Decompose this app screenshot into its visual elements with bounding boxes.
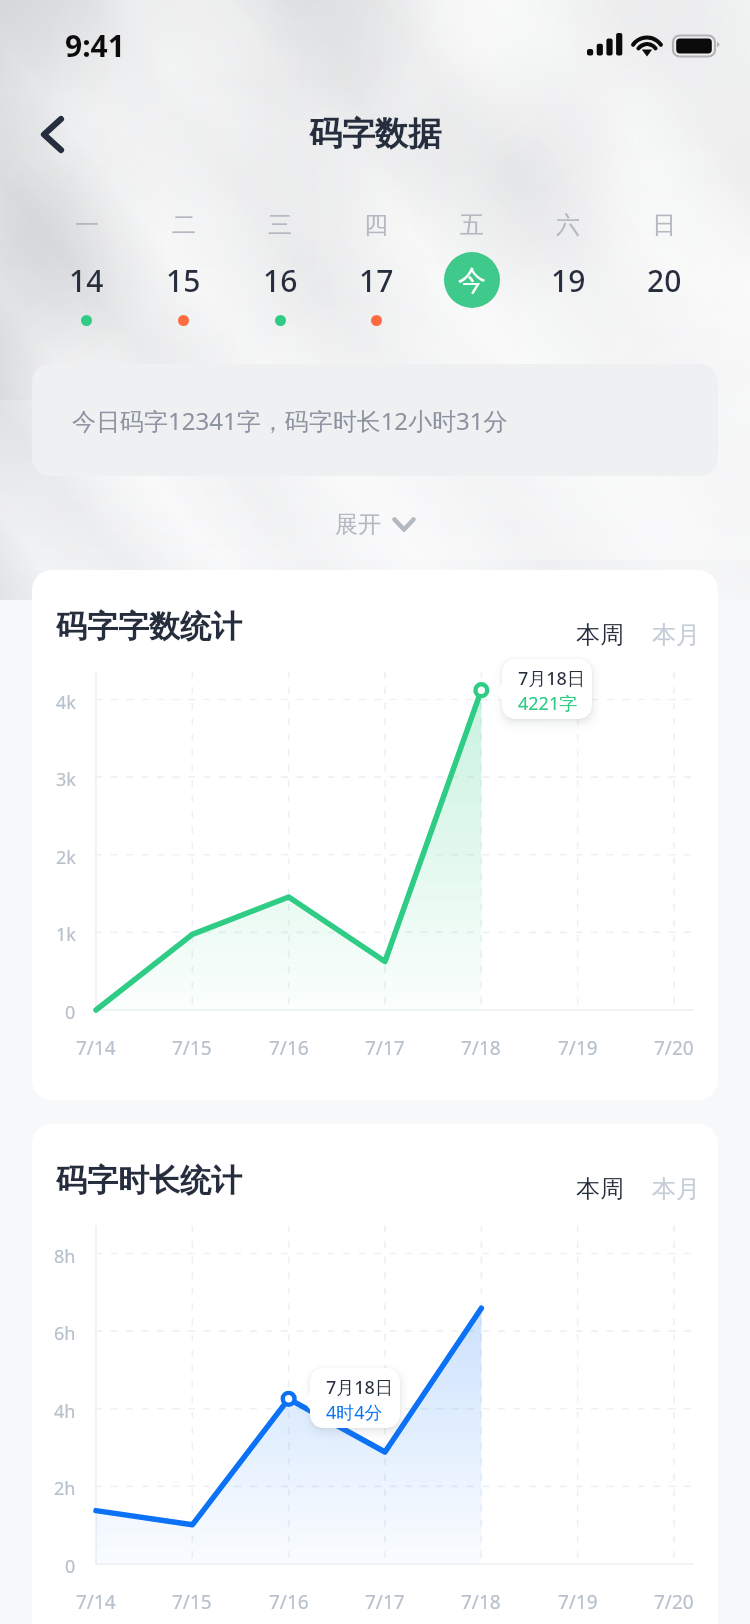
staticText: 7/16 xyxy=(269,1589,309,1615)
staticText: 20 xyxy=(647,260,682,301)
button[interactable]: 三 xyxy=(232,200,328,350)
staticText: 7/20 xyxy=(654,1589,694,1615)
staticText: 2h xyxy=(54,1476,76,1501)
staticText: 7/20 xyxy=(654,1035,694,1061)
staticText: 7/17 xyxy=(365,1035,405,1061)
staticText: 展开 xyxy=(335,510,381,539)
button[interactable]: 日 xyxy=(616,200,712,350)
staticText: 7月18日 xyxy=(326,1375,393,1400)
staticText: 0 xyxy=(65,1000,76,1025)
staticText: 码字数据 xyxy=(309,113,441,155)
staticText: 本月 xyxy=(652,1174,700,1204)
staticText: 7/18 xyxy=(461,1589,501,1615)
staticText: 2k xyxy=(56,845,76,870)
button[interactable]: 本周 xyxy=(570,1166,630,1212)
staticText: 7/17 xyxy=(365,1589,405,1615)
staticText: 7/14 xyxy=(76,1035,116,1061)
button[interactable]: 一 xyxy=(38,200,135,350)
button[interactable]: 六 xyxy=(520,200,616,350)
staticText: 17 xyxy=(359,260,394,301)
staticText: 19 xyxy=(551,260,586,301)
staticText: 9:41 xyxy=(65,25,125,66)
staticText: 4时4分 xyxy=(326,1400,383,1425)
staticText: 8h xyxy=(54,1244,76,1269)
button[interactable]: 本月 xyxy=(646,1166,706,1212)
staticText: 7/14 xyxy=(76,1589,116,1615)
staticText: 7/15 xyxy=(172,1035,212,1061)
staticText: 六 xyxy=(556,210,580,240)
staticText: 7/15 xyxy=(172,1589,212,1615)
staticText: 本周 xyxy=(576,1174,624,1204)
staticText: 码字时长统计 xyxy=(56,1161,242,1200)
staticText: 4k xyxy=(56,690,76,715)
staticText: 五 xyxy=(460,210,484,240)
staticText: 16 xyxy=(263,260,298,301)
button[interactable]: 四 xyxy=(328,200,424,350)
button[interactable]: 本周 xyxy=(570,612,630,658)
staticText: 今 xyxy=(458,263,486,298)
staticText: 7/19 xyxy=(558,1589,598,1615)
staticText: 0 xyxy=(65,1554,76,1579)
staticText: 4h xyxy=(54,1399,76,1424)
staticText: 15 xyxy=(166,260,201,301)
button[interactable]: 五 xyxy=(424,200,520,350)
staticText: 本月 xyxy=(652,620,700,650)
staticText: 今日码字12341字，码字时长12小时31分 xyxy=(72,404,508,437)
button[interactable]: 展开 xyxy=(323,504,428,545)
staticText: 3k xyxy=(56,767,76,792)
staticText: 日 xyxy=(652,210,676,240)
staticText: 7/16 xyxy=(269,1035,309,1061)
staticText: 四 xyxy=(364,210,388,240)
staticText: 14 xyxy=(69,260,104,301)
button[interactable]: Back xyxy=(20,96,84,172)
staticText: 三 xyxy=(268,210,292,240)
staticText: 7月18日 xyxy=(518,666,585,691)
staticText: 4221字 xyxy=(518,691,578,716)
staticText: 二 xyxy=(172,210,196,240)
staticText: 7/19 xyxy=(558,1035,598,1061)
staticText: 7/18 xyxy=(461,1035,501,1061)
button[interactable]: 今日码字12341字，码字时长12小时31分 xyxy=(32,364,718,476)
staticText: 一 xyxy=(75,210,99,240)
staticText: 6h xyxy=(54,1321,76,1346)
staticText: 1k xyxy=(56,922,76,947)
staticText: 码字字数统计 xyxy=(56,607,242,646)
button[interactable]: 本月 xyxy=(646,612,706,658)
button[interactable]: 二 xyxy=(135,200,232,350)
staticText: 本周 xyxy=(576,620,624,650)
